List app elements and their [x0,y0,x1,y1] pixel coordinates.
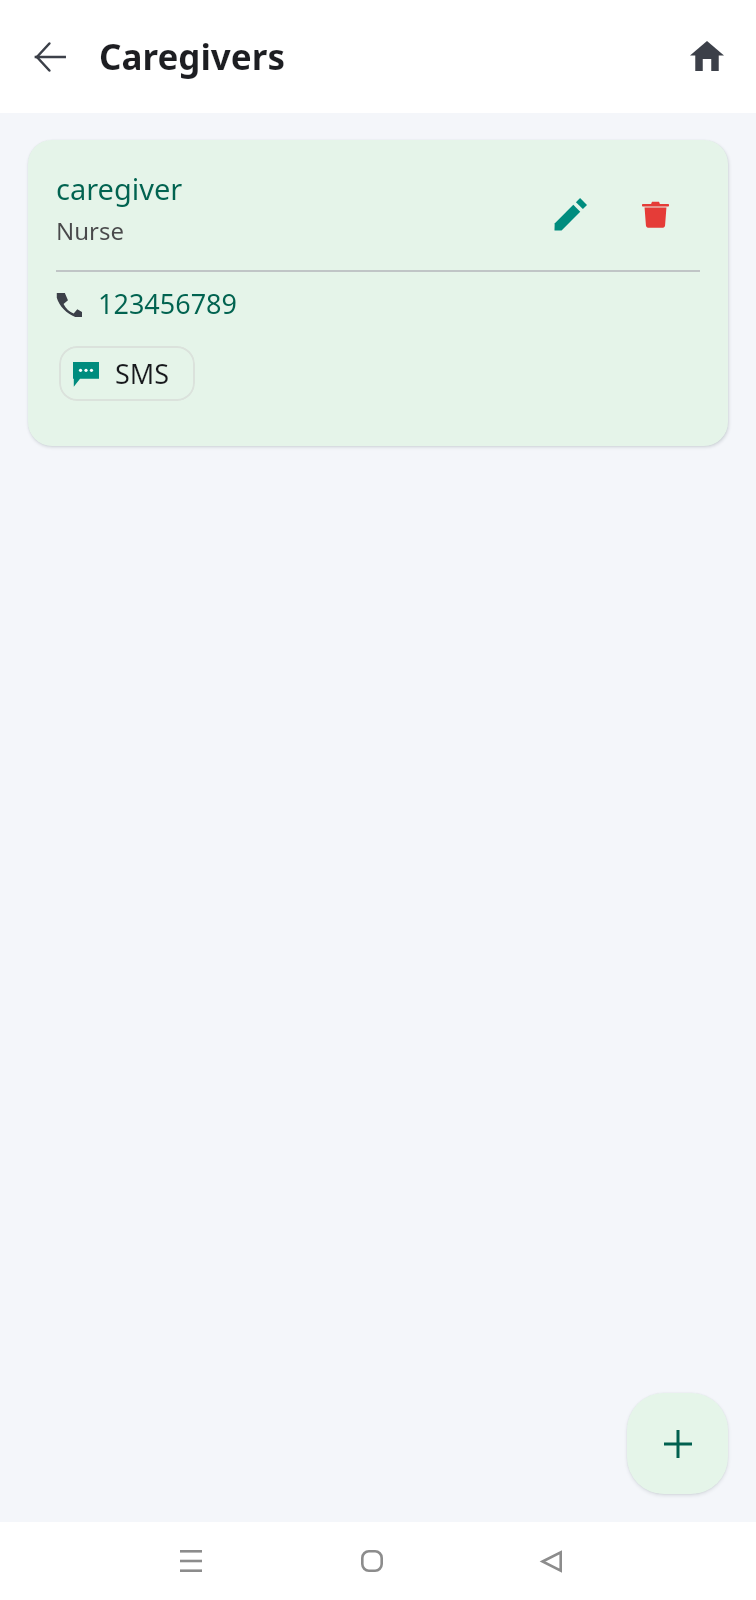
button[interactable]: SMS [59,346,195,401]
staticText: Nurse [56,214,125,247]
button[interactable]: Home [336,1525,408,1597]
staticText: SMS [115,355,170,392]
staticText: 123456789 [98,285,237,322]
button[interactable]: Delete [621,180,689,248]
staticText: caregiver [56,169,183,208]
button[interactable]: Back [6,13,94,101]
button[interactable]: Back [515,1525,587,1597]
button[interactable]: caregiver [28,140,728,446]
button[interactable]: Recents [155,1525,227,1597]
button[interactable]: Add caregiver [627,1393,728,1494]
button[interactable]: Edit [536,180,604,248]
staticText: Caregivers [99,33,285,81]
button[interactable]: Home [663,12,751,100]
